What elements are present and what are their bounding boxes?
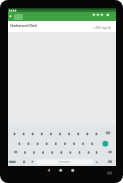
staticText: Cholesterol (Diet)	[10, 23, 37, 27]
button[interactable]: Cholesterol (Diet)	[8, 21, 116, 32]
button[interactable]	[67, 166, 78, 175]
button[interactable]	[14, 14, 23, 20]
staticText: < 200 mg/dL	[93, 26, 112, 30]
button[interactable]	[91, 12, 113, 21]
button[interactable]	[44, 166, 55, 175]
button[interactable]	[104, 168, 115, 177]
button[interactable]	[55, 166, 66, 175]
button[interactable]	[8, 125, 116, 166]
